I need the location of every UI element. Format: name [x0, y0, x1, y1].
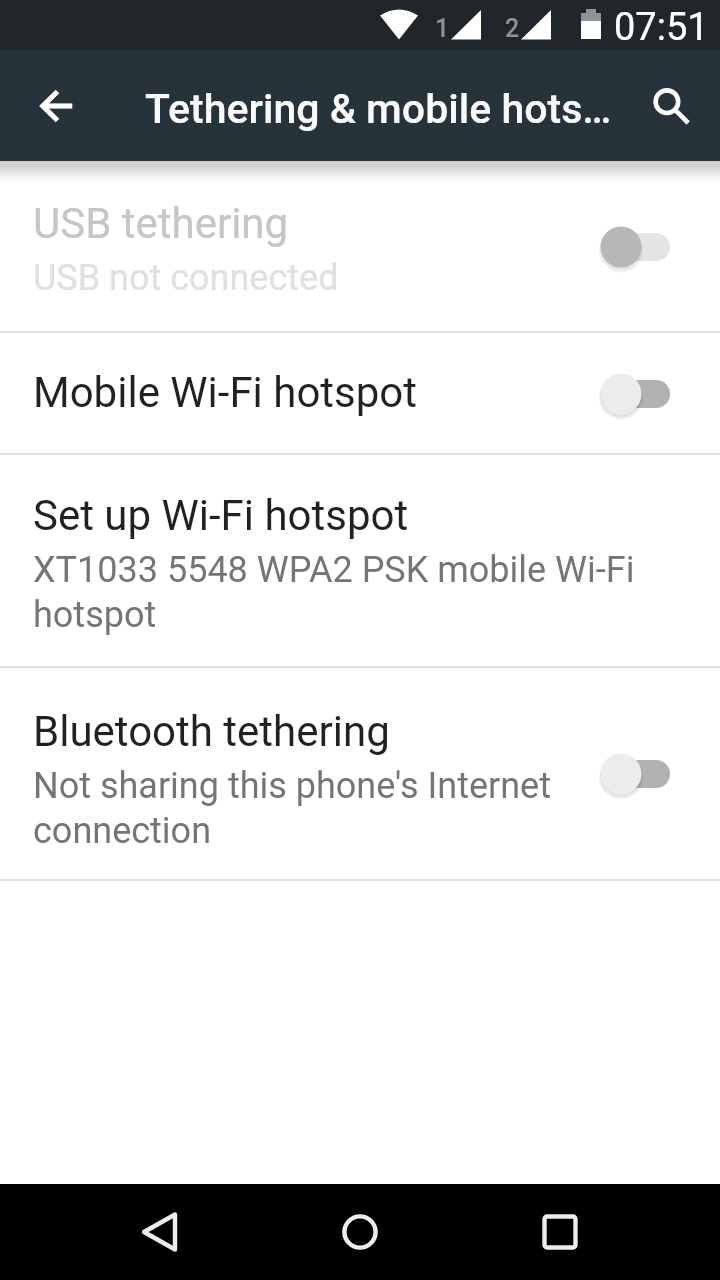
button[interactable]: Set up Wi-Fi hotspot: [0, 454, 720, 668]
button[interactable]: Back: [112, 1184, 208, 1280]
staticText: Set up Wi-Fi hotspot: [33, 491, 409, 540]
staticText: USB tethering: [33, 199, 289, 248]
staticText: 07:51: [614, 5, 709, 50]
staticText: Bluetooth tethering: [33, 707, 390, 756]
button[interactable]: Recent apps: [512, 1184, 608, 1280]
staticText: 2: [505, 14, 520, 43]
staticText: USB not connected: [33, 257, 339, 299]
button[interactable]: USB tethering: [0, 161, 720, 333]
button[interactable]: Toggle: [600, 362, 696, 426]
button[interactable]: Search: [619, 58, 715, 154]
button[interactable]: Toggle: [600, 215, 696, 279]
button[interactable]: Mobile Wi-Fi hotspot: [0, 332, 720, 455]
staticText: Tethering & mobile hots…: [145, 85, 612, 133]
button[interactable]: Bluetooth tethering: [0, 667, 720, 881]
button[interactable]: Toggle: [600, 742, 696, 806]
staticText: XT1033 5548 WPA2 PSK mobile Wi-Fi hotspo…: [33, 549, 653, 636]
staticText: Mobile Wi-Fi hotspot: [33, 368, 418, 417]
staticText: Not sharing this phone's Internet connec…: [33, 765, 653, 852]
button[interactable]: Navigate up: [8, 58, 104, 154]
staticText: 1: [435, 14, 450, 43]
button[interactable]: Home: [312, 1184, 408, 1280]
